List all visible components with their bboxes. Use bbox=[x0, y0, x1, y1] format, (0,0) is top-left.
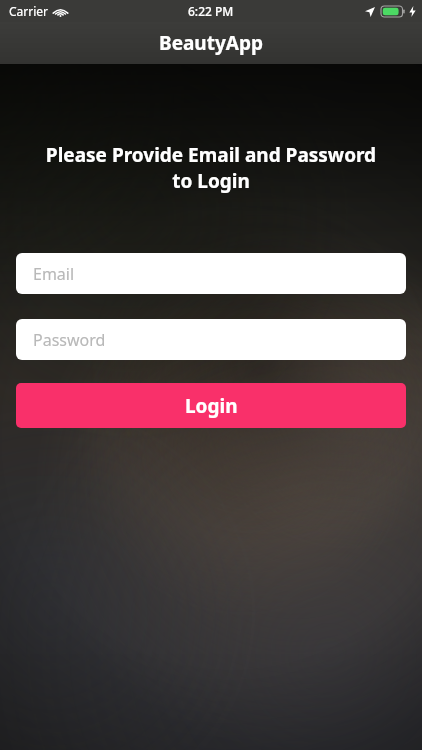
button[interactable]: Email bbox=[16, 253, 406, 294]
staticText: Email bbox=[33, 263, 75, 285]
button[interactable]: Password bbox=[16, 319, 406, 360]
staticText: Password bbox=[33, 329, 106, 351]
other: Wi-Fi signal bbox=[54, 5, 67, 18]
staticText: Carrier bbox=[9, 3, 49, 19]
button[interactable]: Login bbox=[16, 383, 406, 428]
staticText: 6:22 PM bbox=[188, 3, 234, 19]
other: Location services active bbox=[365, 7, 375, 17]
other: Charging bbox=[409, 6, 416, 17]
staticText: Please Provide Email and Password to Log… bbox=[18, 142, 404, 193]
staticText: BeautyApp bbox=[159, 30, 263, 56]
staticText: Login bbox=[185, 393, 238, 419]
other: Battery bbox=[381, 6, 405, 17]
